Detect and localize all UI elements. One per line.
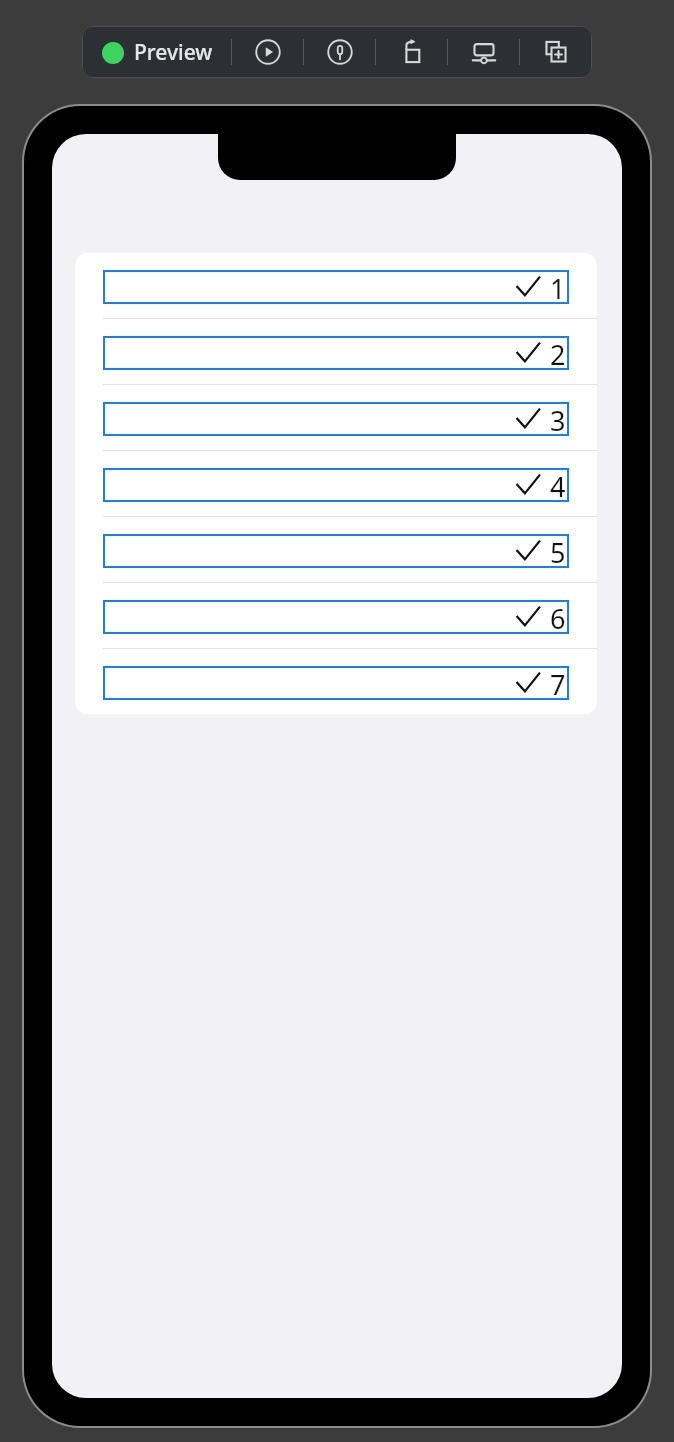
staticText: 6 [550,600,566,634]
button[interactable]: Interactive preview [304,26,375,78]
button[interactable]: Rotate preview [376,26,447,78]
button[interactable]: Preview [98,32,217,73]
button[interactable]: Select device [448,26,519,78]
button[interactable]: 7 [75,649,597,714]
staticText: 2 [550,336,566,370]
staticText: Preview [134,38,213,67]
button[interactable]: 4 [75,451,597,517]
button[interactable]: Run preview [232,26,303,78]
staticText: 3 [550,402,566,436]
button[interactable]: 3 [75,385,597,451]
staticText: 4 [550,468,566,502]
button[interactable]: 1 [75,253,597,319]
staticText: 1 [550,270,566,304]
staticText: 7 [550,666,566,700]
button[interactable]: 5 [75,517,597,583]
button[interactable]: Copy preview [520,26,591,78]
staticText: 5 [550,534,566,568]
button[interactable]: 2 [75,319,597,385]
button[interactable]: 6 [75,583,597,649]
